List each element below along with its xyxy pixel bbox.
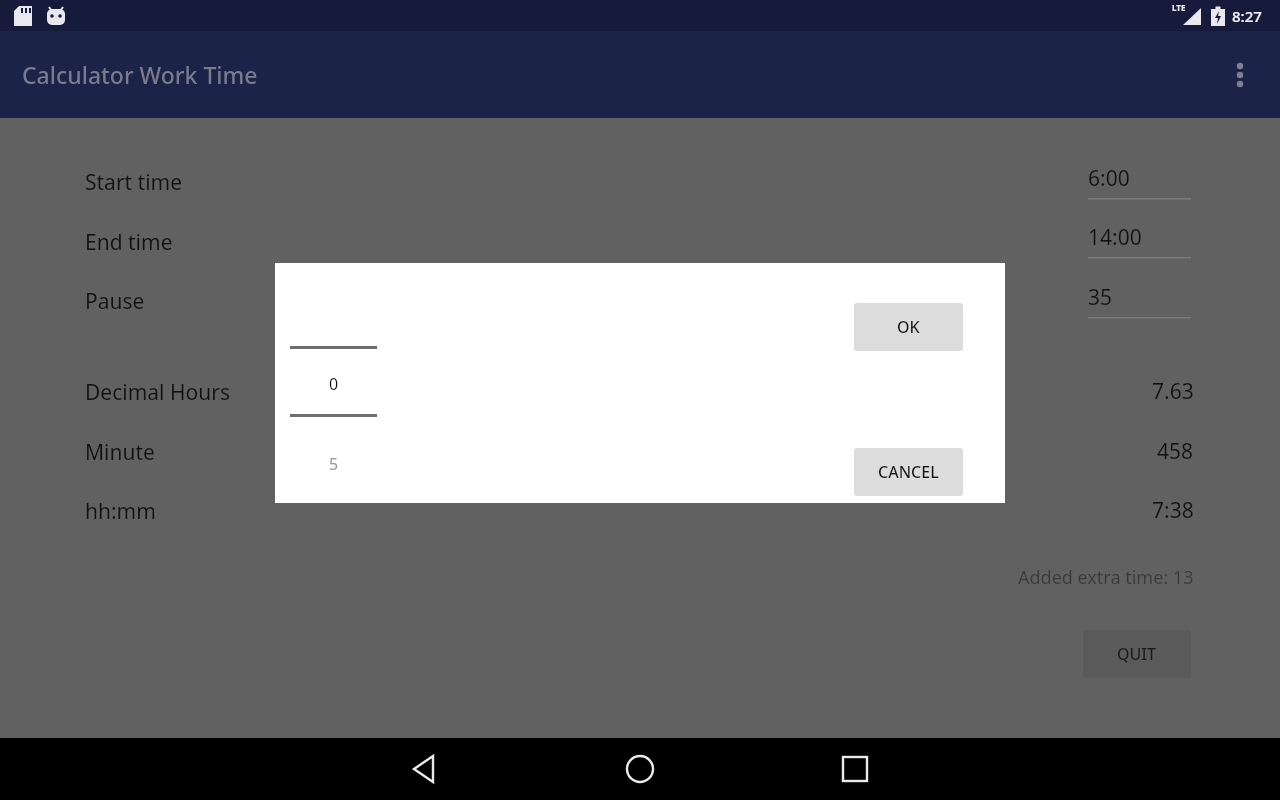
button[interactable]: End time — [85, 227, 173, 257]
button[interactable] — [290, 323, 377, 483]
staticText: 5 — [290, 453, 377, 475]
staticText: Minute — [85, 438, 155, 467]
staticText: hh:mm — [85, 497, 156, 526]
staticText: 6:00 — [1088, 164, 1130, 193]
button[interactable]: OK — [854, 303, 963, 351]
button[interactable]: Home — [610, 739, 670, 799]
button[interactable]: hh:mm — [85, 496, 156, 526]
staticText: Calculator Work Time — [22, 59, 258, 90]
button[interactable]: CANCEL — [854, 448, 963, 496]
staticText: Decimal Hours — [85, 378, 230, 407]
staticText: 458 — [1157, 437, 1194, 466]
staticText: Start time — [85, 168, 183, 197]
button[interactable]: Pause — [85, 286, 145, 316]
staticText: CANCEL — [878, 461, 939, 483]
staticText: Added extra time: 13 — [1018, 565, 1194, 590]
button[interactable]: Start time — [85, 167, 183, 197]
button[interactable]: 14:00 — [1088, 223, 1191, 259]
staticText: 7:38 — [1152, 496, 1194, 525]
staticText: OK — [897, 316, 920, 338]
staticText: 8:27 — [1232, 6, 1262, 26]
button[interactable]: Recent apps — [825, 739, 885, 799]
button[interactable]: Back — [394, 739, 454, 799]
button[interactable]: More options — [1216, 51, 1264, 99]
staticText: 7.63 — [1152, 377, 1194, 406]
button[interactable]: 35 — [1088, 283, 1191, 319]
staticText: 14:00 — [1088, 223, 1142, 252]
button[interactable]: QUIT — [1083, 630, 1191, 678]
staticText: 35 — [1088, 283, 1113, 312]
staticText: 0 — [290, 373, 377, 395]
staticText: LTE — [1172, 2, 1186, 13]
button[interactable]: Minute — [85, 437, 155, 467]
staticText: End time — [85, 228, 173, 257]
staticText: Pause — [85, 287, 145, 316]
button[interactable]: 6:00 — [1088, 164, 1191, 200]
staticText: QUIT — [1117, 643, 1157, 665]
button[interactable]: Decimal Hours — [85, 377, 230, 407]
